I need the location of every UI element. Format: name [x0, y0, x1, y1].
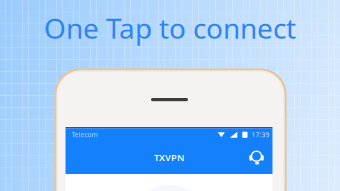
staticText: Telecom — [71, 130, 97, 139]
staticText: One Tap to connect — [44, 9, 296, 47]
button[interactable]: Customer support — [243, 144, 269, 170]
staticText: TXVPN — [154, 151, 184, 164]
staticText: 17:39 — [251, 130, 269, 139]
